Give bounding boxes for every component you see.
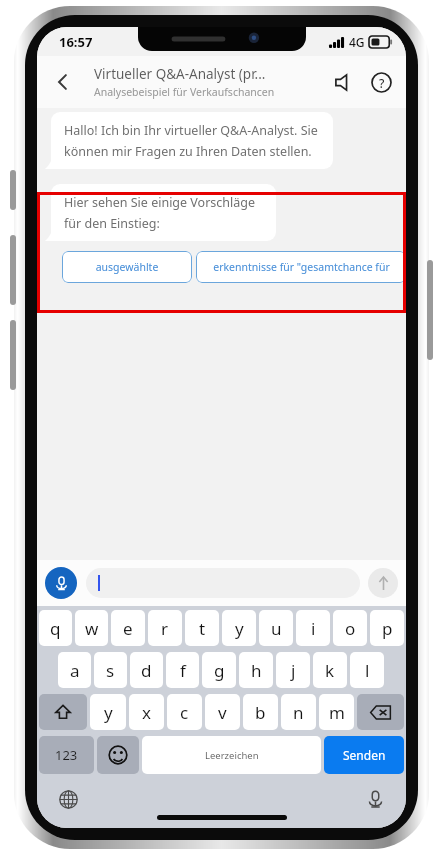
staticText: l	[365, 659, 370, 682]
button[interactable]: Diktieren	[360, 784, 390, 814]
staticText: b	[255, 701, 266, 724]
staticText: Virtueller Q&A-Analyst (pr...	[94, 65, 266, 83]
staticText: 16:57	[59, 33, 93, 51]
button[interactable]: u	[259, 610, 293, 646]
button[interactable]: a	[58, 652, 91, 688]
staticText: w	[85, 617, 99, 640]
button[interactable]: f	[166, 652, 199, 688]
staticText: g	[214, 659, 225, 682]
button[interactable]: x	[129, 694, 164, 730]
staticText: p	[382, 617, 393, 640]
staticText: h	[251, 659, 262, 682]
staticText: 123	[55, 746, 78, 764]
staticText: q	[50, 617, 61, 640]
staticText: ausgewählte erkenntnisse	[71, 260, 183, 274]
staticText: k	[325, 659, 335, 682]
staticText: s	[106, 659, 115, 682]
staticText: 4G	[349, 34, 365, 50]
staticText: r	[161, 617, 169, 640]
staticText: Senden	[343, 747, 386, 763]
button[interactable]: c	[167, 694, 202, 730]
button[interactable]: i	[296, 610, 330, 646]
button[interactable]: n	[281, 694, 316, 730]
button[interactable]	[86, 568, 360, 598]
staticText: y	[104, 701, 113, 724]
button[interactable]: o	[333, 610, 367, 646]
button[interactable]: w	[75, 610, 108, 646]
button[interactable]: erkenntnisse für "gesamtchance für	[196, 251, 406, 283]
staticText: Hier sehen Sie einige Vorschläge für den…	[64, 194, 263, 231]
button[interactable]: g	[202, 652, 236, 688]
button[interactable]: Hilfe	[362, 63, 400, 101]
staticText: d	[141, 659, 152, 682]
staticText: o	[345, 617, 356, 640]
button[interactable]: Umschalt	[39, 694, 87, 730]
staticText: f	[180, 659, 186, 682]
button[interactable]: e	[111, 610, 145, 646]
button[interactable]: Senden	[368, 568, 398, 598]
button[interactable]: p	[370, 610, 404, 646]
staticText: u	[271, 617, 282, 640]
button[interactable]: m	[319, 694, 354, 730]
staticText: x	[142, 701, 151, 724]
button[interactable]: y	[90, 694, 126, 730]
staticText: y	[235, 617, 244, 640]
staticText: j	[291, 659, 296, 682]
staticText: Leerzeichen	[205, 749, 259, 762]
staticText: v	[218, 701, 227, 724]
button[interactable]: r	[148, 610, 182, 646]
staticText: t	[199, 617, 206, 640]
button[interactable]: Spracheingabe	[45, 567, 77, 599]
staticText: Hallo! Ich bin Ihr virtueller Q&A-Analys…	[64, 122, 320, 159]
button[interactable]: Löschen	[357, 694, 404, 730]
staticText: a	[70, 659, 80, 682]
staticText: e	[123, 617, 133, 640]
staticText: erkenntnisse für "gesamtchance für	[213, 260, 390, 274]
button[interactable]: Emoji	[97, 736, 139, 774]
button[interactable]: k	[313, 652, 347, 688]
button[interactable]: Ton	[324, 63, 362, 101]
button[interactable]: y	[222, 610, 256, 646]
staticText: n	[293, 701, 304, 724]
button[interactable]: j	[276, 652, 310, 688]
button[interactable]: Senden	[324, 736, 404, 774]
button[interactable]: t	[185, 610, 219, 646]
button[interactable]: h	[239, 652, 273, 688]
button[interactable]: s	[94, 652, 127, 688]
staticText: ?	[379, 75, 385, 91]
button[interactable]: Leerzeichen	[142, 736, 321, 774]
staticText: i	[311, 617, 316, 640]
button[interactable]: ausgewählte erkenntnisse	[62, 251, 192, 283]
button[interactable]: q	[39, 610, 72, 646]
button[interactable]: 123	[39, 736, 94, 774]
staticText: Analysebeispiel für Verkaufschancen	[94, 85, 275, 99]
button[interactable]: d	[130, 652, 163, 688]
staticText: c	[180, 701, 189, 724]
staticText: m	[329, 701, 345, 724]
button[interactable]: Zurück	[43, 62, 83, 102]
button[interactable]: l	[350, 652, 384, 688]
button[interactable]: v	[205, 694, 240, 730]
button[interactable]: Sprache wechseln	[53, 784, 83, 814]
button[interactable]: b	[243, 694, 278, 730]
